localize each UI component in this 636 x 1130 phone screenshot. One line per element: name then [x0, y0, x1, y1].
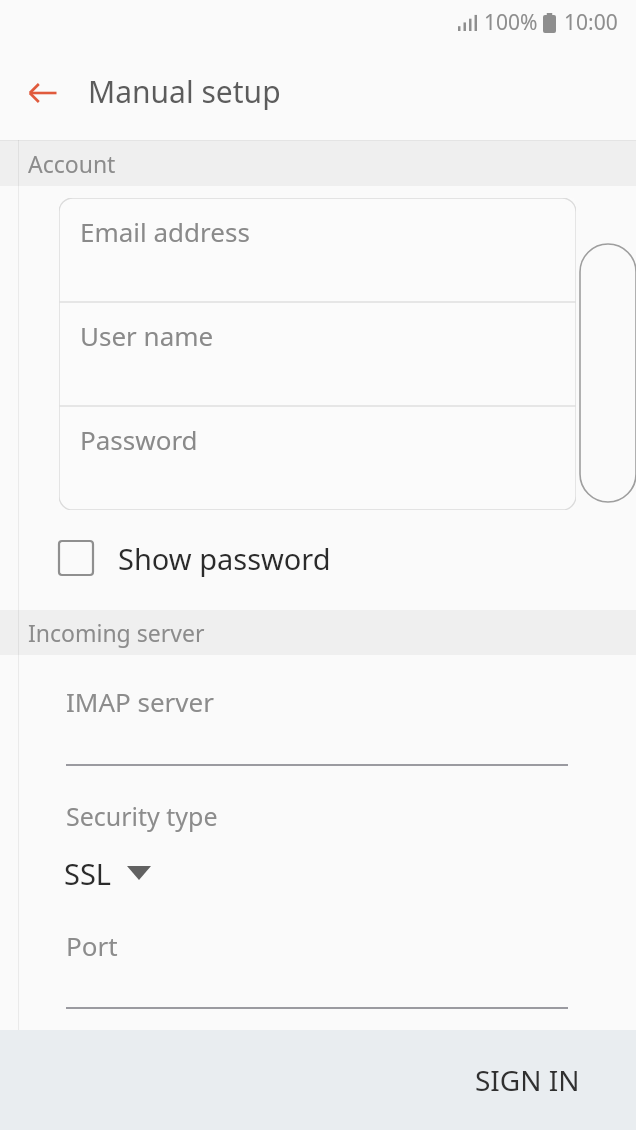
button[interactable]: SIGN IN	[461, 1047, 594, 1113]
button[interactable]: Port	[66, 928, 118, 963]
staticText: SSL	[64, 854, 112, 893]
staticText: Password	[80, 422, 198, 457]
staticText: Account	[28, 148, 116, 179]
staticText: 100%	[484, 8, 538, 37]
staticText: Show password	[118, 539, 331, 578]
staticText: SIGN IN	[475, 1061, 580, 1099]
button[interactable]: IMAP server	[66, 684, 214, 719]
staticText: User name	[80, 318, 214, 353]
button[interactable]: SSL	[64, 851, 151, 895]
staticText: Port	[66, 928, 118, 963]
staticText: Incoming server	[28, 617, 205, 648]
staticText: Manual setup	[88, 71, 281, 112]
staticText: 10:00	[564, 8, 618, 37]
button[interactable]: Email address	[59, 198, 576, 302]
button[interactable]: User name	[59, 302, 576, 406]
staticText: Email address	[80, 214, 250, 249]
staticText: IMAP server	[66, 684, 214, 719]
staticText: Security type	[66, 799, 218, 833]
button[interactable]: Back	[14, 64, 72, 122]
button[interactable]: Password	[59, 406, 576, 510]
button[interactable]: Show password	[59, 533, 331, 583]
